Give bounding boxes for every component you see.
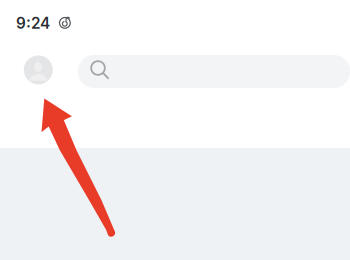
button[interactable]: Account <box>23 55 53 85</box>
button[interactable]: Search <box>78 55 350 88</box>
staticText: 9:24 <box>16 14 50 33</box>
